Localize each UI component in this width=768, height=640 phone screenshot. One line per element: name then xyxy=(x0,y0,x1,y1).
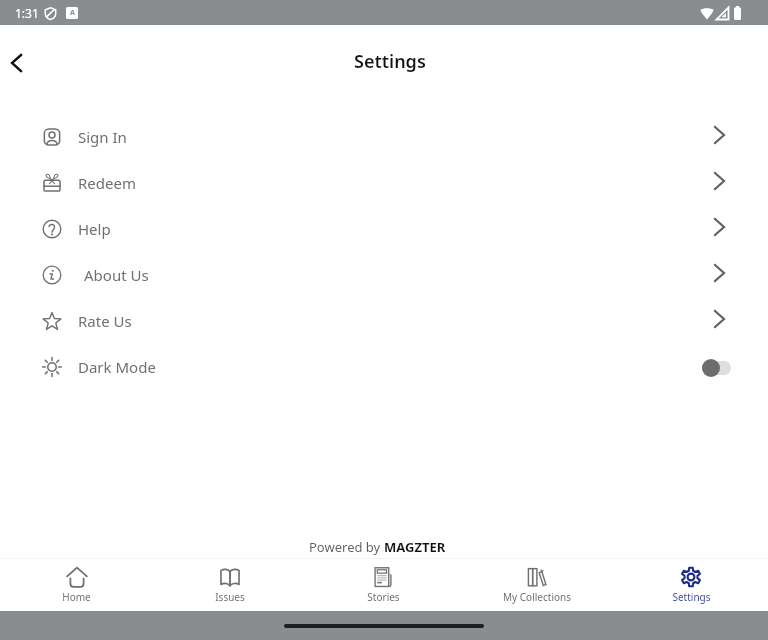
button[interactable]: Home xyxy=(0,559,153,611)
button[interactable]: Help xyxy=(0,206,768,252)
button[interactable]: Stories xyxy=(306,559,460,611)
staticText: Dark Mode xyxy=(78,357,156,377)
staticText: Help xyxy=(78,219,111,239)
button[interactable]: Back xyxy=(0,41,32,85)
button[interactable]: My Collections xyxy=(460,559,614,611)
button[interactable]: About Us xyxy=(0,252,768,298)
staticText: 1:31 xyxy=(15,5,39,21)
button[interactable]: Settings xyxy=(614,559,768,611)
staticText: Stories xyxy=(367,590,400,604)
staticText: Rate Us xyxy=(78,311,132,331)
staticText: About Us xyxy=(84,265,149,285)
button[interactable]: Toggle dark mode xyxy=(702,358,731,377)
staticText: Issues xyxy=(215,590,245,604)
staticText: Home xyxy=(62,590,91,604)
staticText: A xyxy=(70,8,75,18)
button[interactable]: Redeem xyxy=(0,160,768,206)
staticText: Powered by xyxy=(309,538,384,556)
staticText: MAGZTER xyxy=(384,538,446,556)
staticText: Settings xyxy=(672,590,711,604)
staticText: Sign In xyxy=(78,127,127,147)
button[interactable]: Sign In xyxy=(0,114,768,160)
button[interactable]: Rate Us xyxy=(0,298,768,344)
staticText: My Collections xyxy=(503,590,571,604)
button[interactable]: Issues xyxy=(153,559,306,611)
staticText: Redeem xyxy=(78,173,136,193)
staticText: Settings xyxy=(354,49,426,74)
button[interactable]: Dark Mode xyxy=(0,344,768,390)
